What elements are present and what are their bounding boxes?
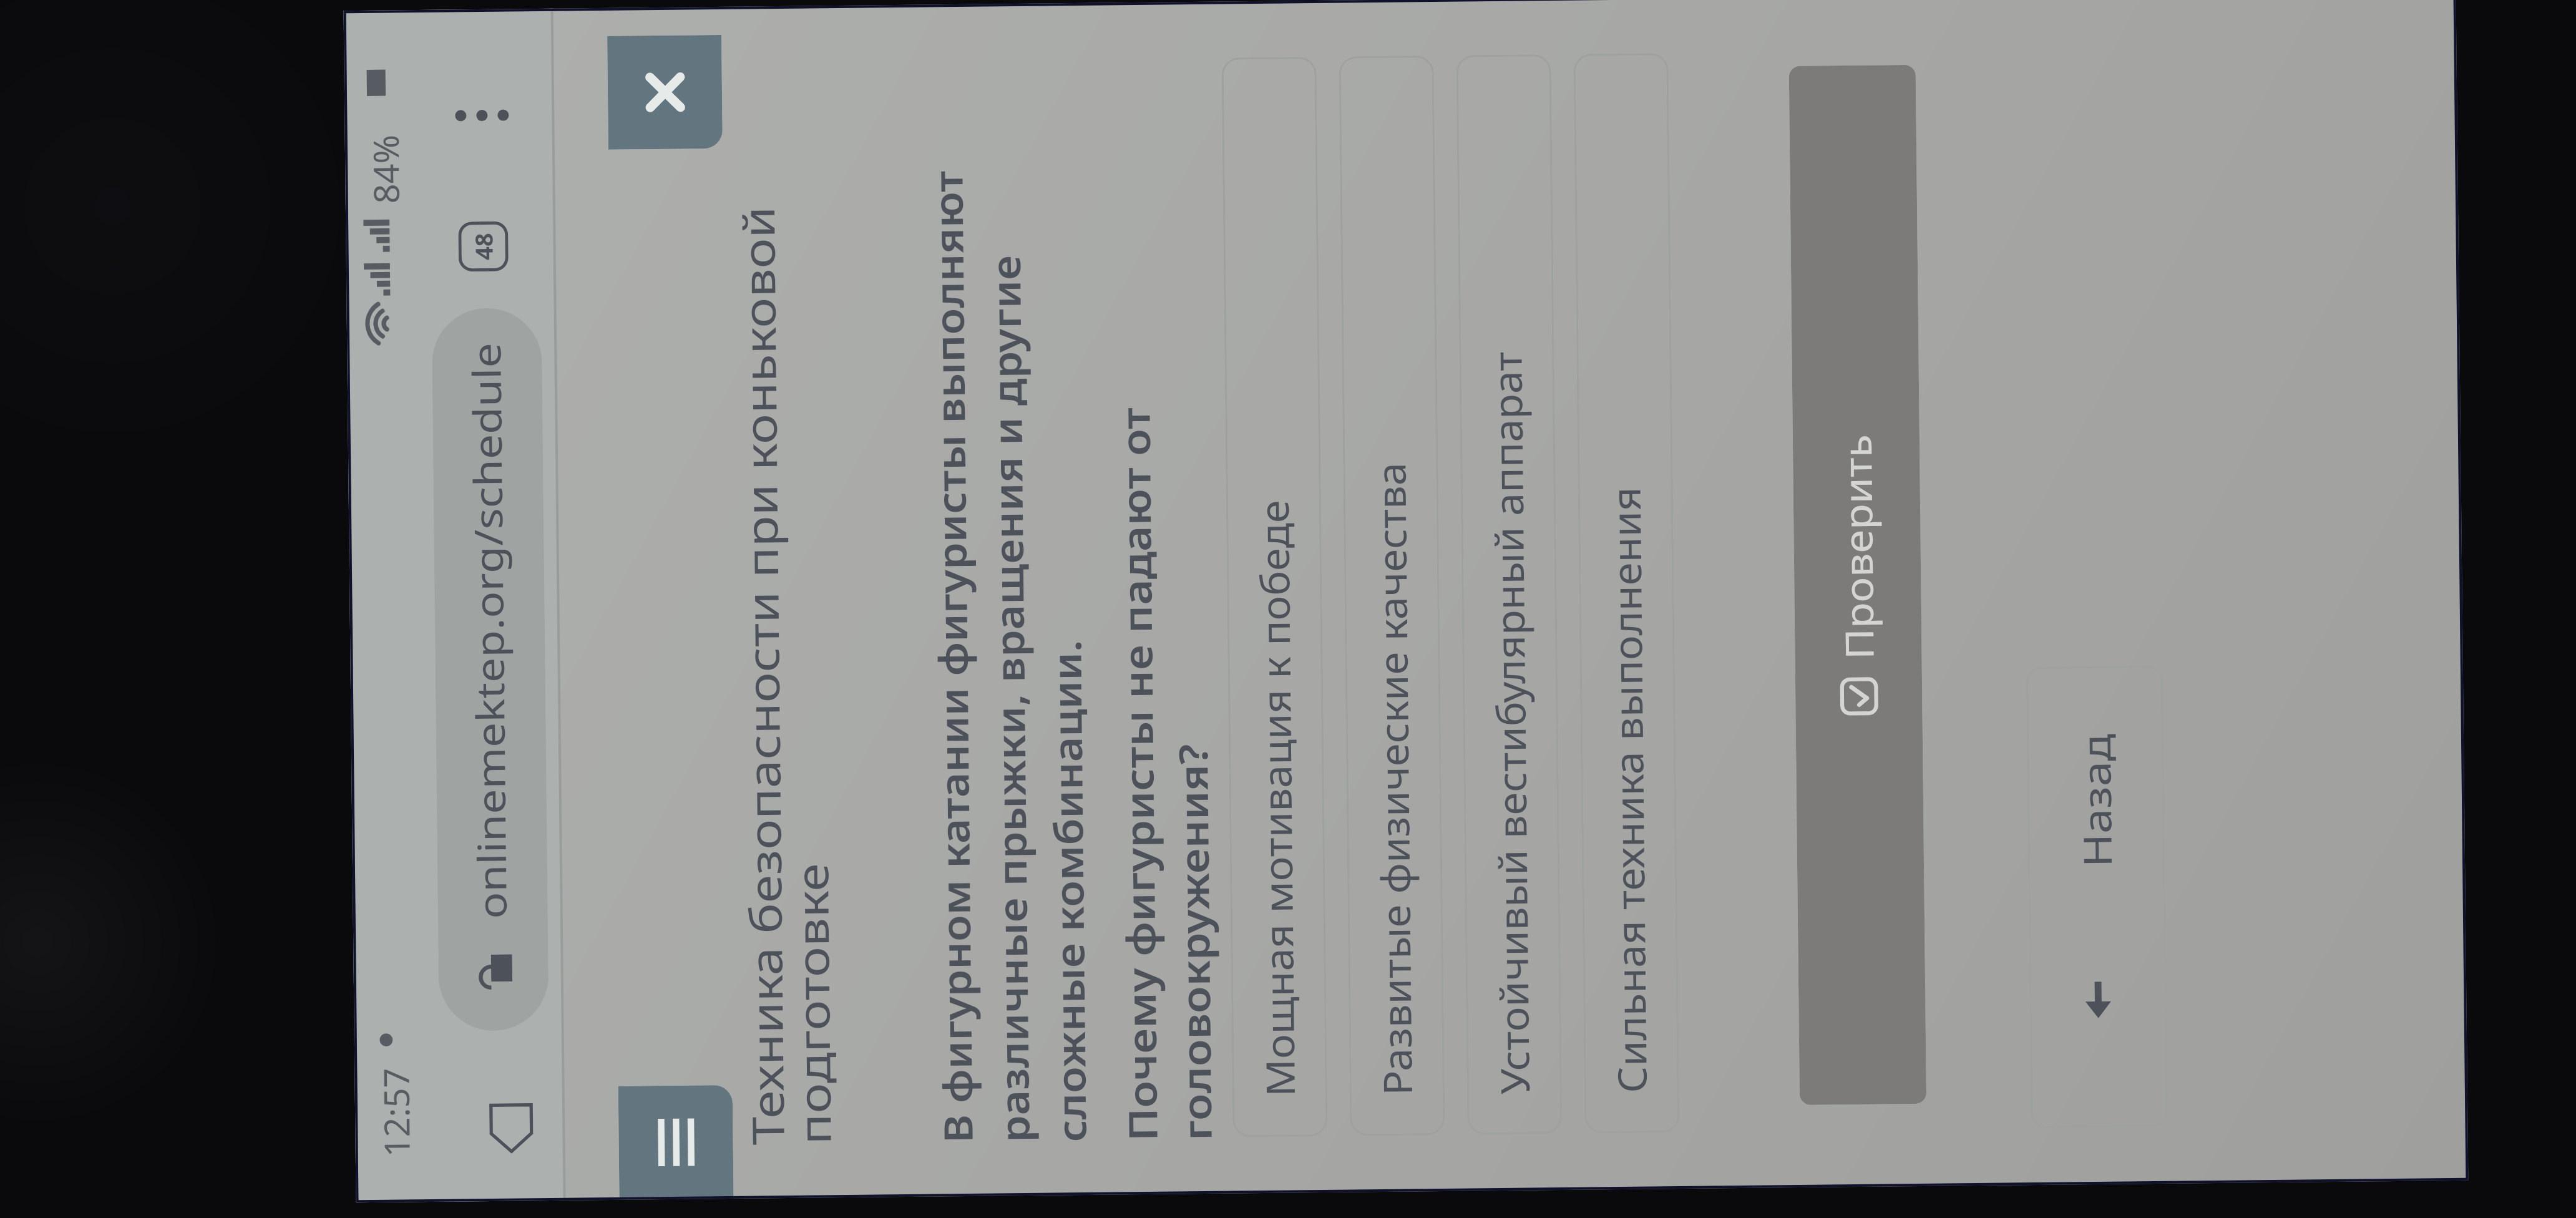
button[interactable]: More options [452,85,512,146]
staticText: onlinemektep.org/schedule [459,342,518,919]
button[interactable]: Back [473,1088,549,1169]
button[interactable]: Tabs [453,216,514,277]
staticText: Устойчивый вестибулярный аппарат [1480,351,1541,1095]
staticText: Сильная техника выполнения [1599,486,1659,1093]
staticText: 84% [361,134,409,204]
button[interactable]: Close [607,35,723,150]
button[interactable] [432,308,549,1031]
button[interactable]: Устойчивый вестибулярный аппарат [1456,54,1562,1135]
staticText: 12:57 [371,1067,420,1157]
staticText: Проверить [1830,434,1885,660]
staticText: Назад [2069,733,2123,868]
staticText: Развитые физические качества [1364,462,1424,1096]
button[interactable]: Назад [2026,666,2168,1128]
button[interactable]: Menu [618,1085,734,1200]
staticText: 48 [467,233,500,260]
staticText: В фигурном катании фигуристы выполняют р… [921,169,1098,1143]
button[interactable]: Проверить [1789,65,1926,1105]
staticText: Техника безопасности при коньковой подго… [728,205,844,1145]
button[interactable]: Сильная техника выполнения [1573,53,1680,1133]
button[interactable]: Мощная мотивация к победе [1222,57,1328,1137]
button[interactable]: Развитые физические качества [1339,56,1445,1136]
staticText: Почему фигуристы не падают от головокруж… [1108,406,1223,1142]
staticText: Мощная мотивация к победе [1247,499,1307,1097]
